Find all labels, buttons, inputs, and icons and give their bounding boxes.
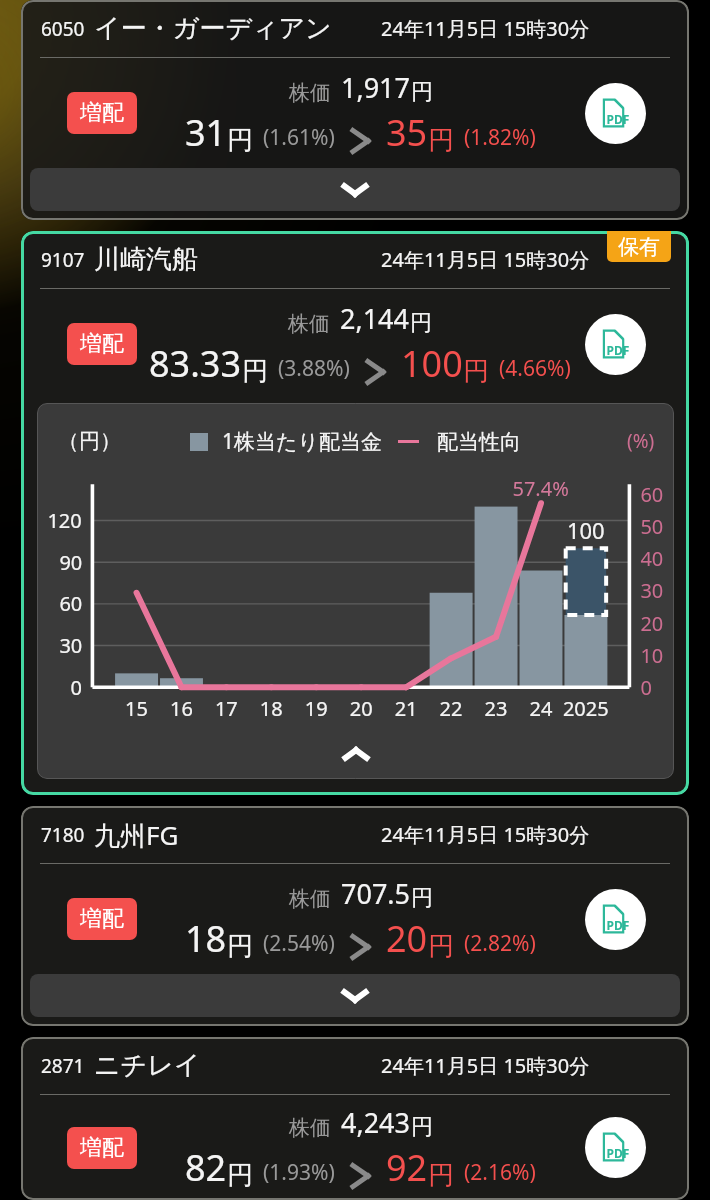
staticText: 円: [227, 1159, 253, 1192]
button[interactable]: PDF: [585, 314, 646, 375]
button[interactable]: 7180: [21, 806, 689, 1026]
staticText: 九州FG: [94, 817, 179, 853]
staticText: 20: [386, 914, 428, 963]
staticText: 円: [428, 930, 454, 963]
staticText: 円: [242, 355, 268, 388]
staticText: 35: [386, 108, 428, 157]
button[interactable]: 増配: [80, 99, 124, 127]
staticText: 増配: [80, 1134, 124, 1162]
staticText: 9107: [41, 247, 85, 273]
staticText: 株価: [288, 311, 330, 337]
staticText: 円: [227, 124, 253, 157]
staticText: 24年11月5日 15時30分: [381, 15, 590, 42]
staticText: 円: [463, 355, 489, 388]
button[interactable]: 6050: [21, 0, 689, 220]
button[interactable]: 保有: [607, 231, 671, 262]
staticText: 24年11月5日 15時30分: [381, 1052, 590, 1079]
staticText: (3.88%): [278, 354, 350, 383]
staticText: 増配: [80, 905, 124, 933]
button[interactable]: Expand: [30, 168, 680, 211]
staticText: (2.16%): [464, 1158, 536, 1187]
staticText: イー・ガーディアン: [94, 12, 332, 45]
staticText: (1.61%): [263, 123, 335, 152]
staticText: 増配: [80, 330, 124, 358]
staticText: 2871: [41, 1053, 85, 1079]
staticText: 24年11月5日 15時30分: [381, 821, 590, 848]
staticText: 川崎汽船: [94, 243, 198, 276]
staticText: 92: [386, 1143, 428, 1192]
staticText: 24年11月5日 15時30分: [381, 246, 590, 273]
staticText: （円）: [58, 428, 121, 454]
staticText: 円: [411, 884, 433, 912]
button[interactable]: 増配: [80, 330, 124, 358]
staticText: 円: [411, 78, 433, 106]
button[interactable]: 2871: [21, 1037, 689, 1200]
staticText: 1,917: [341, 69, 411, 106]
staticText: 株価: [289, 1115, 331, 1141]
staticText: (2.54%): [263, 929, 335, 958]
staticText: (1.82%): [464, 123, 536, 152]
button[interactable]: PDF: [585, 83, 646, 144]
staticText: ニチレイ: [94, 1049, 201, 1082]
button[interactable]: PDF: [585, 889, 646, 950]
button[interactable]: Collapse: [37, 729, 674, 779]
staticText: 82: [185, 1143, 227, 1192]
staticText: 7180: [41, 822, 85, 848]
staticText: 配当性向: [437, 429, 521, 455]
button[interactable]: 増配: [80, 1134, 124, 1162]
staticText: 円: [227, 930, 253, 963]
staticText: 6050: [41, 16, 85, 42]
staticText: 株価: [289, 80, 331, 106]
staticText: 円: [428, 1159, 454, 1192]
staticText: (1.93%): [263, 1158, 335, 1187]
staticText: 18: [185, 914, 227, 963]
staticText: 83.33: [149, 339, 242, 388]
button[interactable]: Expand: [30, 974, 680, 1017]
staticText: 円: [410, 309, 432, 337]
staticText: 2,144: [340, 300, 410, 337]
staticText: (2.82%): [464, 929, 536, 958]
button[interactable]: 増配: [80, 905, 124, 933]
button[interactable]: 9107: [21, 231, 689, 795]
staticText: (4.66%): [499, 354, 571, 383]
staticText: 保有: [618, 234, 660, 260]
button[interactable]: PDF: [585, 1117, 646, 1178]
staticText: 株価: [289, 886, 331, 912]
staticText: 707.5: [341, 875, 411, 912]
staticText: 31: [185, 108, 227, 157]
staticText: 4,243: [341, 1104, 411, 1141]
staticText: (%): [627, 428, 655, 454]
staticText: 円: [411, 1113, 433, 1141]
staticText: 円: [428, 124, 454, 157]
staticText: 増配: [80, 99, 124, 127]
staticText: 1株当たり配当金: [222, 427, 382, 456]
staticText: 100: [401, 339, 463, 388]
